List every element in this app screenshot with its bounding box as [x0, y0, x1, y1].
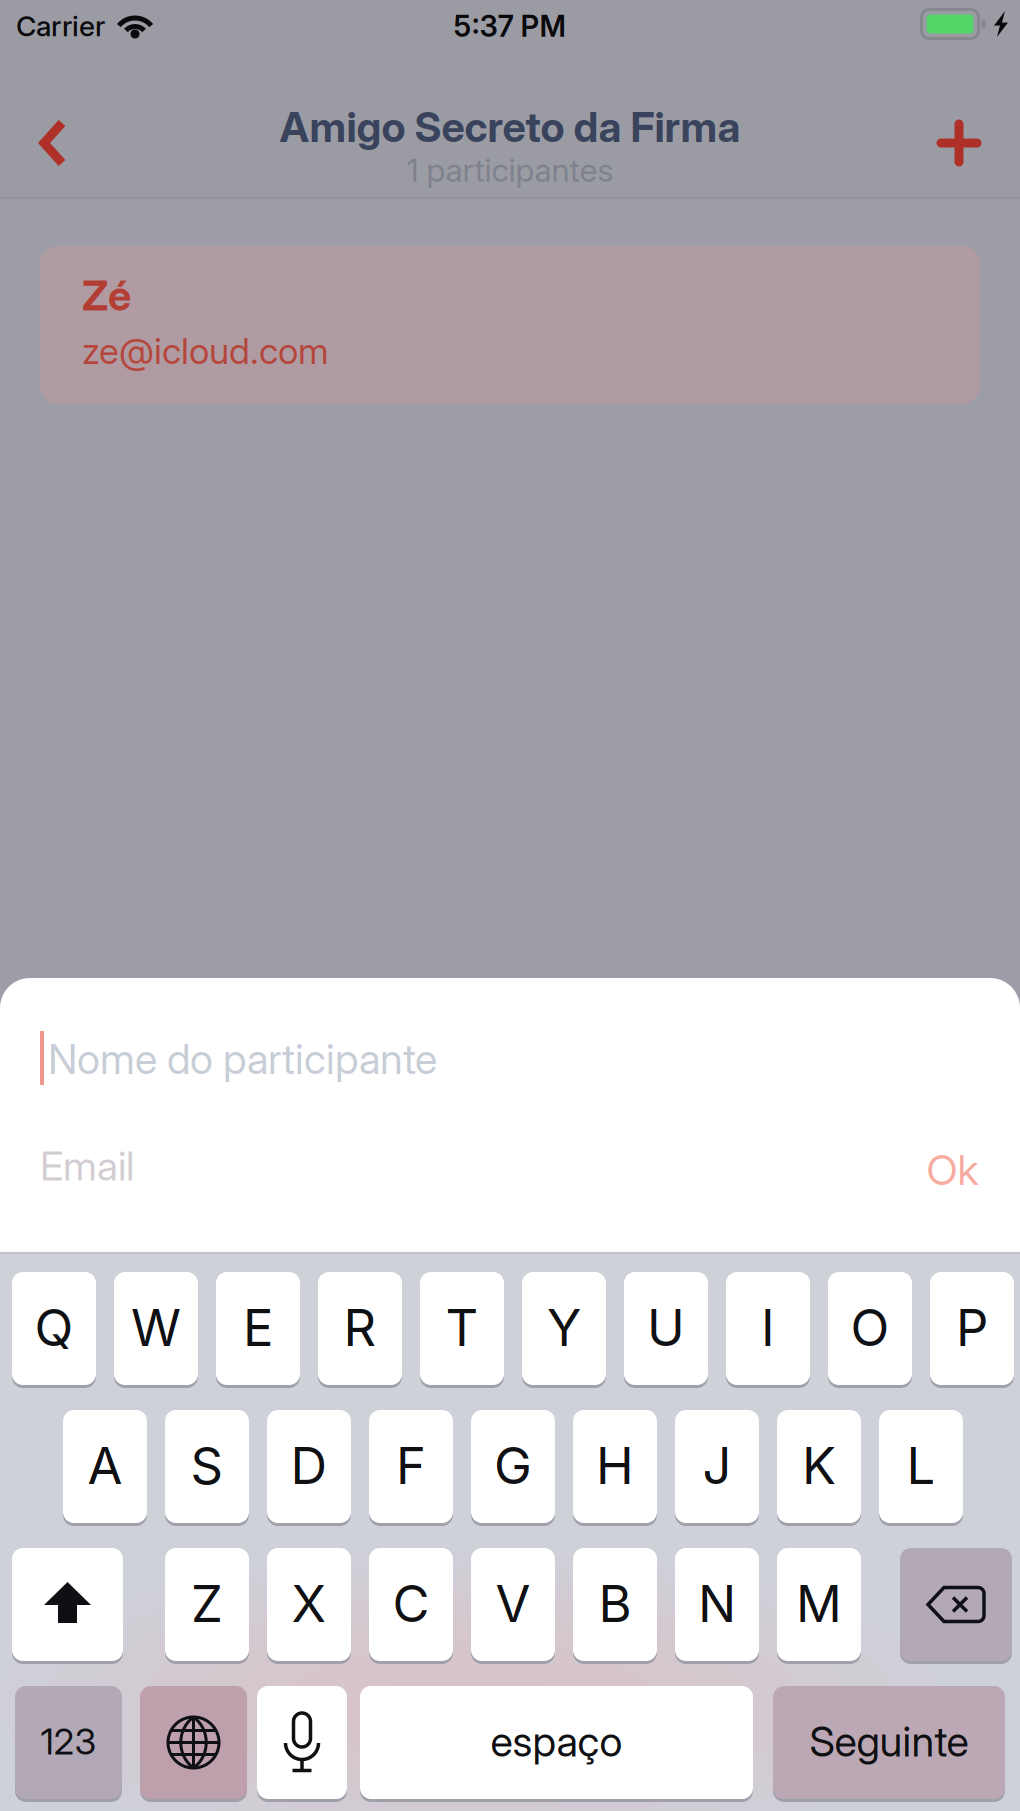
button[interactable]: K	[777, 1410, 861, 1526]
staticText: Seguinte	[809, 1717, 968, 1766]
button[interactable]: P	[930, 1272, 1014, 1388]
staticText: T	[445, 1298, 478, 1357]
button[interactable]: Next keyboard	[140, 1686, 247, 1802]
staticText: 1 participantes	[406, 151, 613, 189]
button[interactable]: Add participant	[0, 0, 66, 66]
staticText: Nome do participante	[48, 1035, 437, 1083]
button[interactable]: T	[420, 1272, 504, 1388]
staticText: K	[802, 1436, 836, 1495]
button[interactable]: Shift	[12, 1548, 123, 1664]
button[interactable]: Zé	[0, 0, 940, 158]
staticText: N	[698, 1574, 736, 1633]
button[interactable]: Y	[522, 1272, 606, 1388]
staticText: 5:37 PM	[453, 9, 566, 43]
staticText: Zé	[82, 271, 131, 320]
button[interactable]: A	[63, 1410, 147, 1526]
button[interactable]: J	[675, 1410, 759, 1526]
button[interactable]: Q	[12, 1272, 96, 1388]
staticText: O	[850, 1298, 889, 1357]
button[interactable]: Delete	[900, 1548, 1012, 1664]
staticText: B	[598, 1574, 631, 1633]
button[interactable]: X	[267, 1548, 351, 1664]
button[interactable]: Back	[0, 0, 56, 66]
button[interactable]: B	[573, 1548, 657, 1664]
staticText: Z	[191, 1574, 223, 1633]
staticText: 123	[40, 1720, 96, 1763]
staticText: L	[906, 1436, 935, 1495]
staticText: ze@icloud.com	[82, 330, 329, 372]
staticText: P	[956, 1298, 988, 1357]
button[interactable]: V	[471, 1548, 555, 1664]
staticText: D	[290, 1436, 327, 1495]
staticText: H	[596, 1436, 634, 1495]
button[interactable]: E	[216, 1272, 300, 1388]
staticText: J	[702, 1436, 731, 1495]
staticText: S	[190, 1436, 223, 1495]
staticText: I	[761, 1298, 775, 1357]
button[interactable]: W	[114, 1272, 198, 1388]
staticText: R	[343, 1298, 376, 1357]
button[interactable]: L	[879, 1410, 963, 1526]
button[interactable]: Z	[165, 1548, 249, 1664]
staticText: G	[494, 1436, 532, 1495]
button[interactable]: R	[318, 1272, 402, 1388]
staticText: V	[495, 1574, 530, 1633]
button[interactable]: M	[777, 1548, 861, 1664]
staticText: F	[396, 1436, 426, 1495]
staticText: X	[291, 1574, 326, 1633]
button[interactable]: D	[267, 1410, 351, 1526]
button[interactable]: N	[675, 1548, 759, 1664]
button[interactable]: G	[471, 1410, 555, 1526]
staticText: Carrier	[16, 9, 105, 42]
staticText: E	[243, 1298, 273, 1357]
button[interactable]: O	[828, 1272, 912, 1388]
staticText: Email	[40, 1142, 134, 1190]
button[interactable]: C	[369, 1548, 453, 1664]
button[interactable]: Ok	[0, 0, 95, 64]
button[interactable]: Dictation	[257, 1686, 347, 1802]
staticText: Ok	[926, 1146, 978, 1194]
staticText: M	[796, 1574, 842, 1633]
button[interactable]: H	[573, 1410, 657, 1526]
staticText: U	[647, 1298, 685, 1357]
button[interactable]: 123	[15, 1686, 122, 1802]
button[interactable]: S	[165, 1410, 249, 1526]
staticText: C	[392, 1574, 429, 1633]
button[interactable]: I	[726, 1272, 810, 1388]
staticText: W	[131, 1298, 181, 1357]
staticText: Amigo Secreto da Firma	[279, 103, 740, 151]
staticText: A	[87, 1436, 122, 1495]
staticText: Q	[34, 1298, 73, 1357]
button[interactable]: F	[369, 1410, 453, 1526]
button[interactable]: U	[624, 1272, 708, 1388]
button[interactable]: espaço	[360, 1686, 753, 1802]
staticText: espaço	[490, 1717, 622, 1766]
staticText: Y	[547, 1298, 581, 1357]
button[interactable]: Seguinte	[773, 1686, 1005, 1802]
